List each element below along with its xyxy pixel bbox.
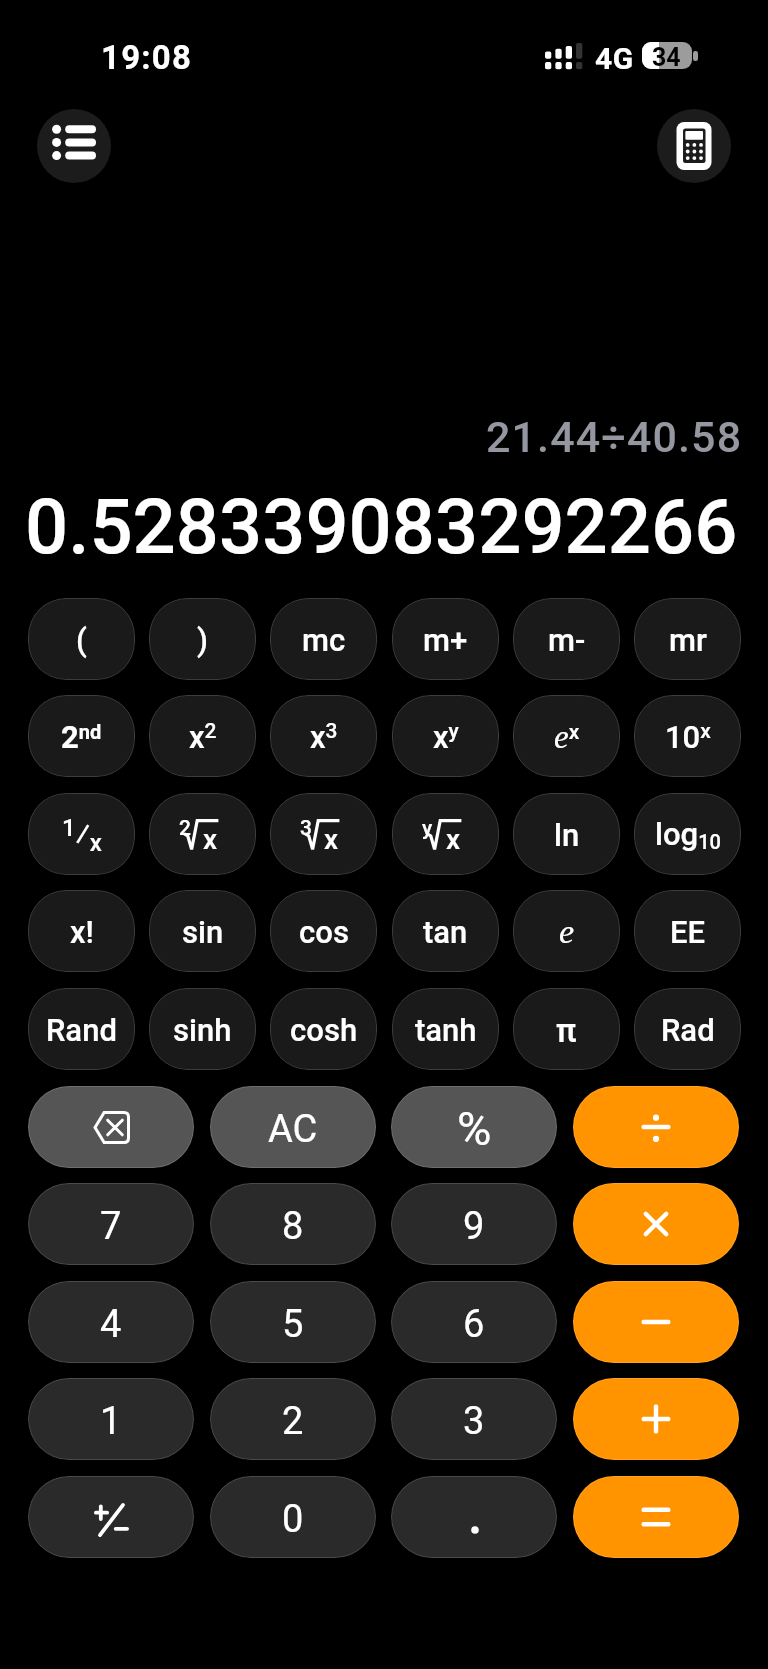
- button[interactable]: sin: [149, 890, 256, 972]
- button[interactable]: Minus: [573, 1281, 739, 1363]
- staticText: ): [197, 622, 208, 658]
- button[interactable]: x!: [28, 890, 135, 972]
- staticText: π: [556, 1011, 577, 1050]
- staticText: xy: [433, 719, 459, 755]
- button[interactable]: 9: [391, 1183, 557, 1265]
- button[interactable]: mr: [634, 598, 741, 680]
- button[interactable]: Backspace: [28, 1086, 194, 1168]
- staticText: 1: [100, 1399, 122, 1444]
- button[interactable]: Equals: [573, 1476, 739, 1558]
- button[interactable]: Multiply: [573, 1183, 739, 1265]
- button[interactable]: 2nd: [28, 695, 135, 777]
- staticText: ex: [554, 719, 580, 756]
- button[interactable]: x3: [270, 695, 377, 777]
- button[interactable]: m+: [392, 598, 499, 680]
- button[interactable]: e: [513, 890, 620, 972]
- button[interactable]: 1⁄x: [28, 793, 135, 875]
- staticText: mc: [302, 622, 346, 658]
- staticText: Rand: [46, 1012, 117, 1048]
- staticText: 4: [100, 1302, 122, 1347]
- button[interactable]: xy: [392, 695, 499, 777]
- button[interactable]: Calculator: [657, 109, 731, 183]
- button[interactable]: Plus minus: [28, 1476, 194, 1558]
- staticText: 9: [463, 1204, 485, 1249]
- staticText: (: [76, 622, 87, 658]
- staticText: tan: [423, 914, 468, 950]
- staticText: 10x: [665, 719, 711, 755]
- button[interactable]: m-: [513, 598, 620, 680]
- staticText: 1⁄x: [62, 814, 102, 857]
- button[interactable]: log10: [634, 793, 741, 875]
- staticText: 21.44÷40.58: [486, 412, 743, 462]
- button[interactable]: History: [37, 109, 111, 183]
- button[interactable]: 4: [28, 1281, 194, 1363]
- button[interactable]: 5: [210, 1281, 376, 1363]
- staticText: 34: [652, 43, 681, 72]
- staticText: 3: [300, 816, 312, 841]
- button[interactable]: tanh: [392, 988, 499, 1070]
- button[interactable]: ): [149, 598, 256, 680]
- staticText: sinh: [173, 1012, 232, 1048]
- staticText: Rad: [661, 1012, 715, 1048]
- button[interactable]: mc: [270, 598, 377, 680]
- staticText: ln: [554, 817, 580, 853]
- button[interactable]: cos: [270, 890, 377, 972]
- button[interactable]: (: [28, 598, 135, 680]
- staticText: log10: [655, 816, 721, 854]
- button[interactable]: tan: [392, 890, 499, 972]
- button[interactable]: 0: [210, 1476, 376, 1558]
- button[interactable]: Divide: [573, 1086, 739, 1168]
- button[interactable]: sinh: [149, 988, 256, 1070]
- staticText: cosh: [290, 1012, 358, 1048]
- button[interactable]: 3: [270, 793, 377, 875]
- staticText: x: [446, 823, 461, 855]
- button[interactable]: 1: [28, 1378, 194, 1460]
- staticText: tanh: [415, 1012, 477, 1048]
- staticText: AC: [268, 1107, 318, 1152]
- staticText: 8: [282, 1204, 304, 1249]
- button[interactable]: π: [513, 988, 620, 1070]
- staticText: e: [559, 913, 575, 951]
- button[interactable]: AC: [210, 1086, 376, 1168]
- staticText: 0.528339083292266: [25, 482, 738, 571]
- staticText: 3: [463, 1399, 485, 1444]
- staticText: %: [457, 1101, 492, 1156]
- staticText: sin: [182, 914, 224, 950]
- button[interactable]: y: [392, 793, 499, 875]
- button[interactable]: EE: [634, 890, 741, 972]
- button[interactable]: 2: [149, 793, 256, 875]
- staticText: 0: [282, 1497, 304, 1542]
- button[interactable]: Rad: [634, 988, 741, 1070]
- staticText: cos: [299, 914, 349, 950]
- staticText: EE: [670, 914, 706, 950]
- button[interactable]: cosh: [270, 988, 377, 1070]
- staticText: 5: [282, 1302, 304, 1347]
- button[interactable]: 6: [391, 1281, 557, 1363]
- staticText: x: [324, 823, 339, 855]
- button[interactable]: 7: [28, 1183, 194, 1265]
- staticText: 2: [282, 1399, 304, 1444]
- button[interactable]: Decimal point: [391, 1476, 557, 1558]
- staticText: x: [203, 823, 218, 855]
- button[interactable]: %: [391, 1086, 557, 1168]
- button[interactable]: ln: [513, 793, 620, 875]
- button[interactable]: Rand: [28, 988, 135, 1070]
- staticText: x2: [189, 719, 217, 755]
- button[interactable]: x2: [149, 695, 256, 777]
- staticText: y: [422, 816, 433, 841]
- staticText: m+: [423, 622, 468, 658]
- staticText: 7: [100, 1204, 122, 1249]
- staticText: 19:08: [101, 38, 193, 77]
- button[interactable]: 2: [210, 1378, 376, 1460]
- button[interactable]: Plus: [573, 1378, 739, 1460]
- staticText: 2: [179, 816, 191, 841]
- staticText: x!: [70, 914, 94, 950]
- staticText: 6: [463, 1302, 485, 1347]
- button[interactable]: 3: [391, 1378, 557, 1460]
- button[interactable]: 10x: [634, 695, 741, 777]
- staticText: mr: [669, 622, 707, 658]
- button[interactable]: 8: [210, 1183, 376, 1265]
- staticText: x3: [310, 719, 338, 755]
- staticText: m-: [548, 622, 586, 658]
- button[interactable]: ex: [513, 695, 620, 777]
